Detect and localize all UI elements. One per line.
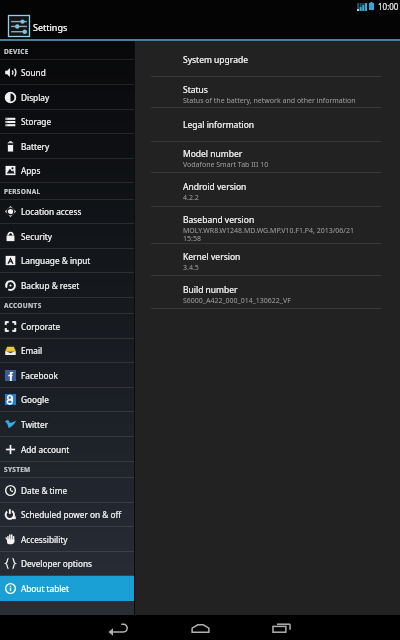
button[interactable]: Status bbox=[135, 77, 400, 108]
button[interactable]: Storage bbox=[0, 110, 134, 134]
staticText: PERSONAL bbox=[4, 187, 41, 196]
staticText: Model number bbox=[183, 148, 243, 160]
staticText: Build number bbox=[183, 284, 238, 296]
button[interactable]: About tablet bbox=[0, 576, 134, 601]
staticText: Status bbox=[183, 84, 208, 96]
button[interactable]: Android version bbox=[135, 173, 400, 207]
button[interactable]: Legal information bbox=[135, 108, 400, 142]
button[interactable]: Sound bbox=[0, 60, 134, 85]
staticText: Storage bbox=[21, 116, 52, 127]
button[interactable]: Google bbox=[0, 388, 134, 412]
button[interactable]: Scheduled power on & off bbox=[0, 503, 134, 527]
staticText: Baseband version bbox=[183, 214, 255, 226]
staticText: Location access bbox=[21, 206, 82, 217]
staticText: Language & input bbox=[21, 255, 91, 266]
staticText: About tablet bbox=[21, 583, 69, 594]
button[interactable]: Backup & reset bbox=[0, 273, 134, 298]
staticText: S6000_A422_000_014_130622_VF bbox=[183, 296, 291, 306]
staticText: Accessibility bbox=[21, 534, 68, 545]
staticText: Display bbox=[21, 92, 50, 103]
staticText: Sound bbox=[21, 67, 46, 78]
button[interactable]: Build number bbox=[135, 276, 400, 309]
staticText: Status of the battery, network and other… bbox=[183, 96, 356, 106]
staticText: Battery bbox=[21, 141, 50, 152]
staticText: DEVICE bbox=[4, 47, 29, 56]
staticText: Android version bbox=[183, 181, 247, 193]
button[interactable]: Baseband version bbox=[135, 207, 400, 244]
staticText: Twitter bbox=[21, 419, 49, 430]
staticText: 10:00 bbox=[378, 1, 399, 12]
button[interactable]: System upgrade bbox=[135, 41, 400, 77]
button[interactable]: Display bbox=[0, 85, 134, 110]
button[interactable]: Model number bbox=[135, 142, 400, 173]
button[interactable]: Twitter bbox=[0, 412, 134, 437]
button[interactable]: Accessibility bbox=[0, 527, 134, 552]
staticText: System upgrade bbox=[183, 54, 248, 66]
button[interactable]: Home bbox=[178, 615, 222, 640]
button[interactable]: Facebook bbox=[0, 363, 134, 388]
staticText: ACCOUNTS bbox=[4, 301, 42, 310]
button[interactable]: Location access bbox=[0, 200, 134, 224]
staticText: Date & time bbox=[21, 485, 68, 496]
staticText: 4.2.2 bbox=[183, 193, 199, 203]
button[interactable]: Back bbox=[96, 615, 140, 640]
button[interactable]: Kernel version bbox=[135, 244, 400, 276]
staticText: Apps bbox=[21, 165, 41, 176]
button[interactable]: Recent apps bbox=[259, 615, 303, 640]
staticText: Google bbox=[21, 394, 49, 405]
button[interactable]: Security bbox=[0, 224, 134, 249]
button[interactable]: Corporate bbox=[0, 314, 134, 339]
button[interactable]: Add account bbox=[0, 437, 134, 462]
staticText: Legal information bbox=[183, 119, 255, 131]
staticText: Add account bbox=[21, 444, 70, 455]
staticText: Backup & reset bbox=[21, 280, 80, 291]
button[interactable]: Developer options bbox=[0, 552, 134, 576]
staticText: Vodafone Smart Tab III 10 bbox=[183, 160, 269, 170]
staticText: Corporate bbox=[21, 321, 61, 332]
staticText: Facebook bbox=[21, 370, 58, 381]
button[interactable]: Email bbox=[0, 339, 134, 363]
staticText: Security bbox=[21, 231, 52, 242]
button[interactable]: Language & input bbox=[0, 249, 134, 273]
button[interactable]: Date & time bbox=[0, 478, 134, 503]
staticText: Developer options bbox=[21, 558, 92, 569]
button[interactable]: Apps bbox=[0, 159, 134, 183]
staticText: Settings bbox=[33, 21, 68, 33]
staticText: Email bbox=[21, 345, 43, 356]
staticText: Kernel version bbox=[183, 251, 241, 263]
staticText: SYSTEM bbox=[4, 465, 31, 474]
staticText: 3.4.5 bbox=[183, 263, 199, 273]
button[interactable]: Battery bbox=[0, 134, 134, 159]
staticText: Scheduled power on & off bbox=[21, 509, 122, 520]
staticText: MOLY.WR8.W1248.MD.WG.MP.V10.F1.P4, 2013/… bbox=[183, 226, 354, 243]
